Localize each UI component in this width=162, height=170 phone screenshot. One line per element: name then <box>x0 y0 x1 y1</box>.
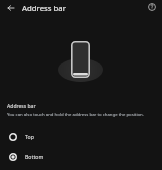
staticText: Bottom <box>25 153 44 160</box>
button[interactable]: Back <box>3 0 19 16</box>
staticText: Address bar <box>7 103 36 110</box>
button[interactable]: Help <box>144 0 160 15</box>
staticText: Top <box>25 133 34 140</box>
button[interactable]: Top <box>0 126 162 146</box>
staticText: Address bar <box>22 3 66 14</box>
staticText: You can also touch and hold the address … <box>7 111 144 117</box>
button[interactable]: Bottom <box>0 146 162 166</box>
